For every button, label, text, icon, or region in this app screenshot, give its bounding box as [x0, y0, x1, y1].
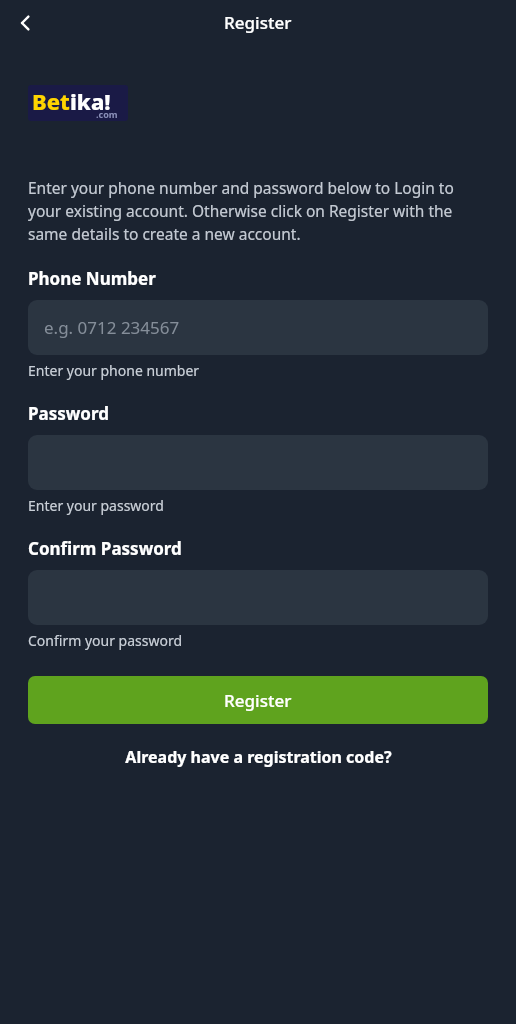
button[interactable]: Register — [28, 676, 488, 724]
button[interactable]: Already have a registration code? — [28, 738, 488, 776]
staticText: e.g. 0712 234567 — [44, 316, 180, 339]
staticText: ika! — [70, 86, 111, 116]
button[interactable]: Back — [8, 5, 44, 41]
staticText: Confirm Password — [28, 537, 182, 560]
staticText: Already have a registration code? — [125, 746, 392, 768]
staticText: Enter your phone number — [28, 361, 200, 380]
staticText: Bet — [32, 86, 70, 116]
staticText: Enter your phone number and password bel… — [28, 177, 488, 245]
staticText: Phone Number — [28, 267, 156, 290]
staticText: Confirm your password — [28, 631, 183, 650]
staticText: Password — [28, 402, 109, 425]
staticText: Register — [224, 689, 292, 712]
staticText: Register — [224, 11, 292, 34]
staticText: Enter your password — [28, 496, 164, 515]
button[interactable]: e.g. 0712 234567 — [28, 300, 488, 355]
staticText: .com — [96, 108, 118, 120]
